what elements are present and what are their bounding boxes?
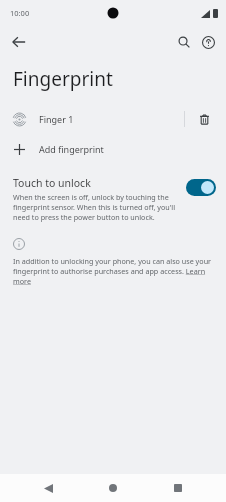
- button[interactable]: Touch to unlock: [0, 172, 226, 226]
- button[interactable]: Search: [172, 30, 196, 54]
- staticText: Add fingerprint: [39, 143, 104, 155]
- button[interactable]: Touch to unlock toggle: [186, 179, 216, 196]
- button[interactable]: Back: [6, 29, 32, 55]
- staticText: When the screen is off, unlock by touchi…: [13, 192, 178, 222]
- button[interactable]: Delete fingerprint: [193, 108, 215, 130]
- staticText: Finger 1: [39, 113, 74, 125]
- staticText: Touch to unlock: [13, 176, 91, 190]
- button[interactable]: Add fingerprint: [0, 134, 226, 164]
- button[interactable]: Finger 1: [0, 104, 226, 134]
- staticText: In addition to unlocking your phone, you…: [13, 256, 218, 286]
- staticText: Fingerprint: [13, 66, 113, 92]
- button[interactable]: Recents: [161, 474, 195, 502]
- button[interactable]: Help: [196, 30, 220, 54]
- button[interactable]: Home: [96, 474, 130, 502]
- button[interactable]: Back: [31, 474, 65, 502]
- staticText: 10:00: [10, 8, 30, 18]
